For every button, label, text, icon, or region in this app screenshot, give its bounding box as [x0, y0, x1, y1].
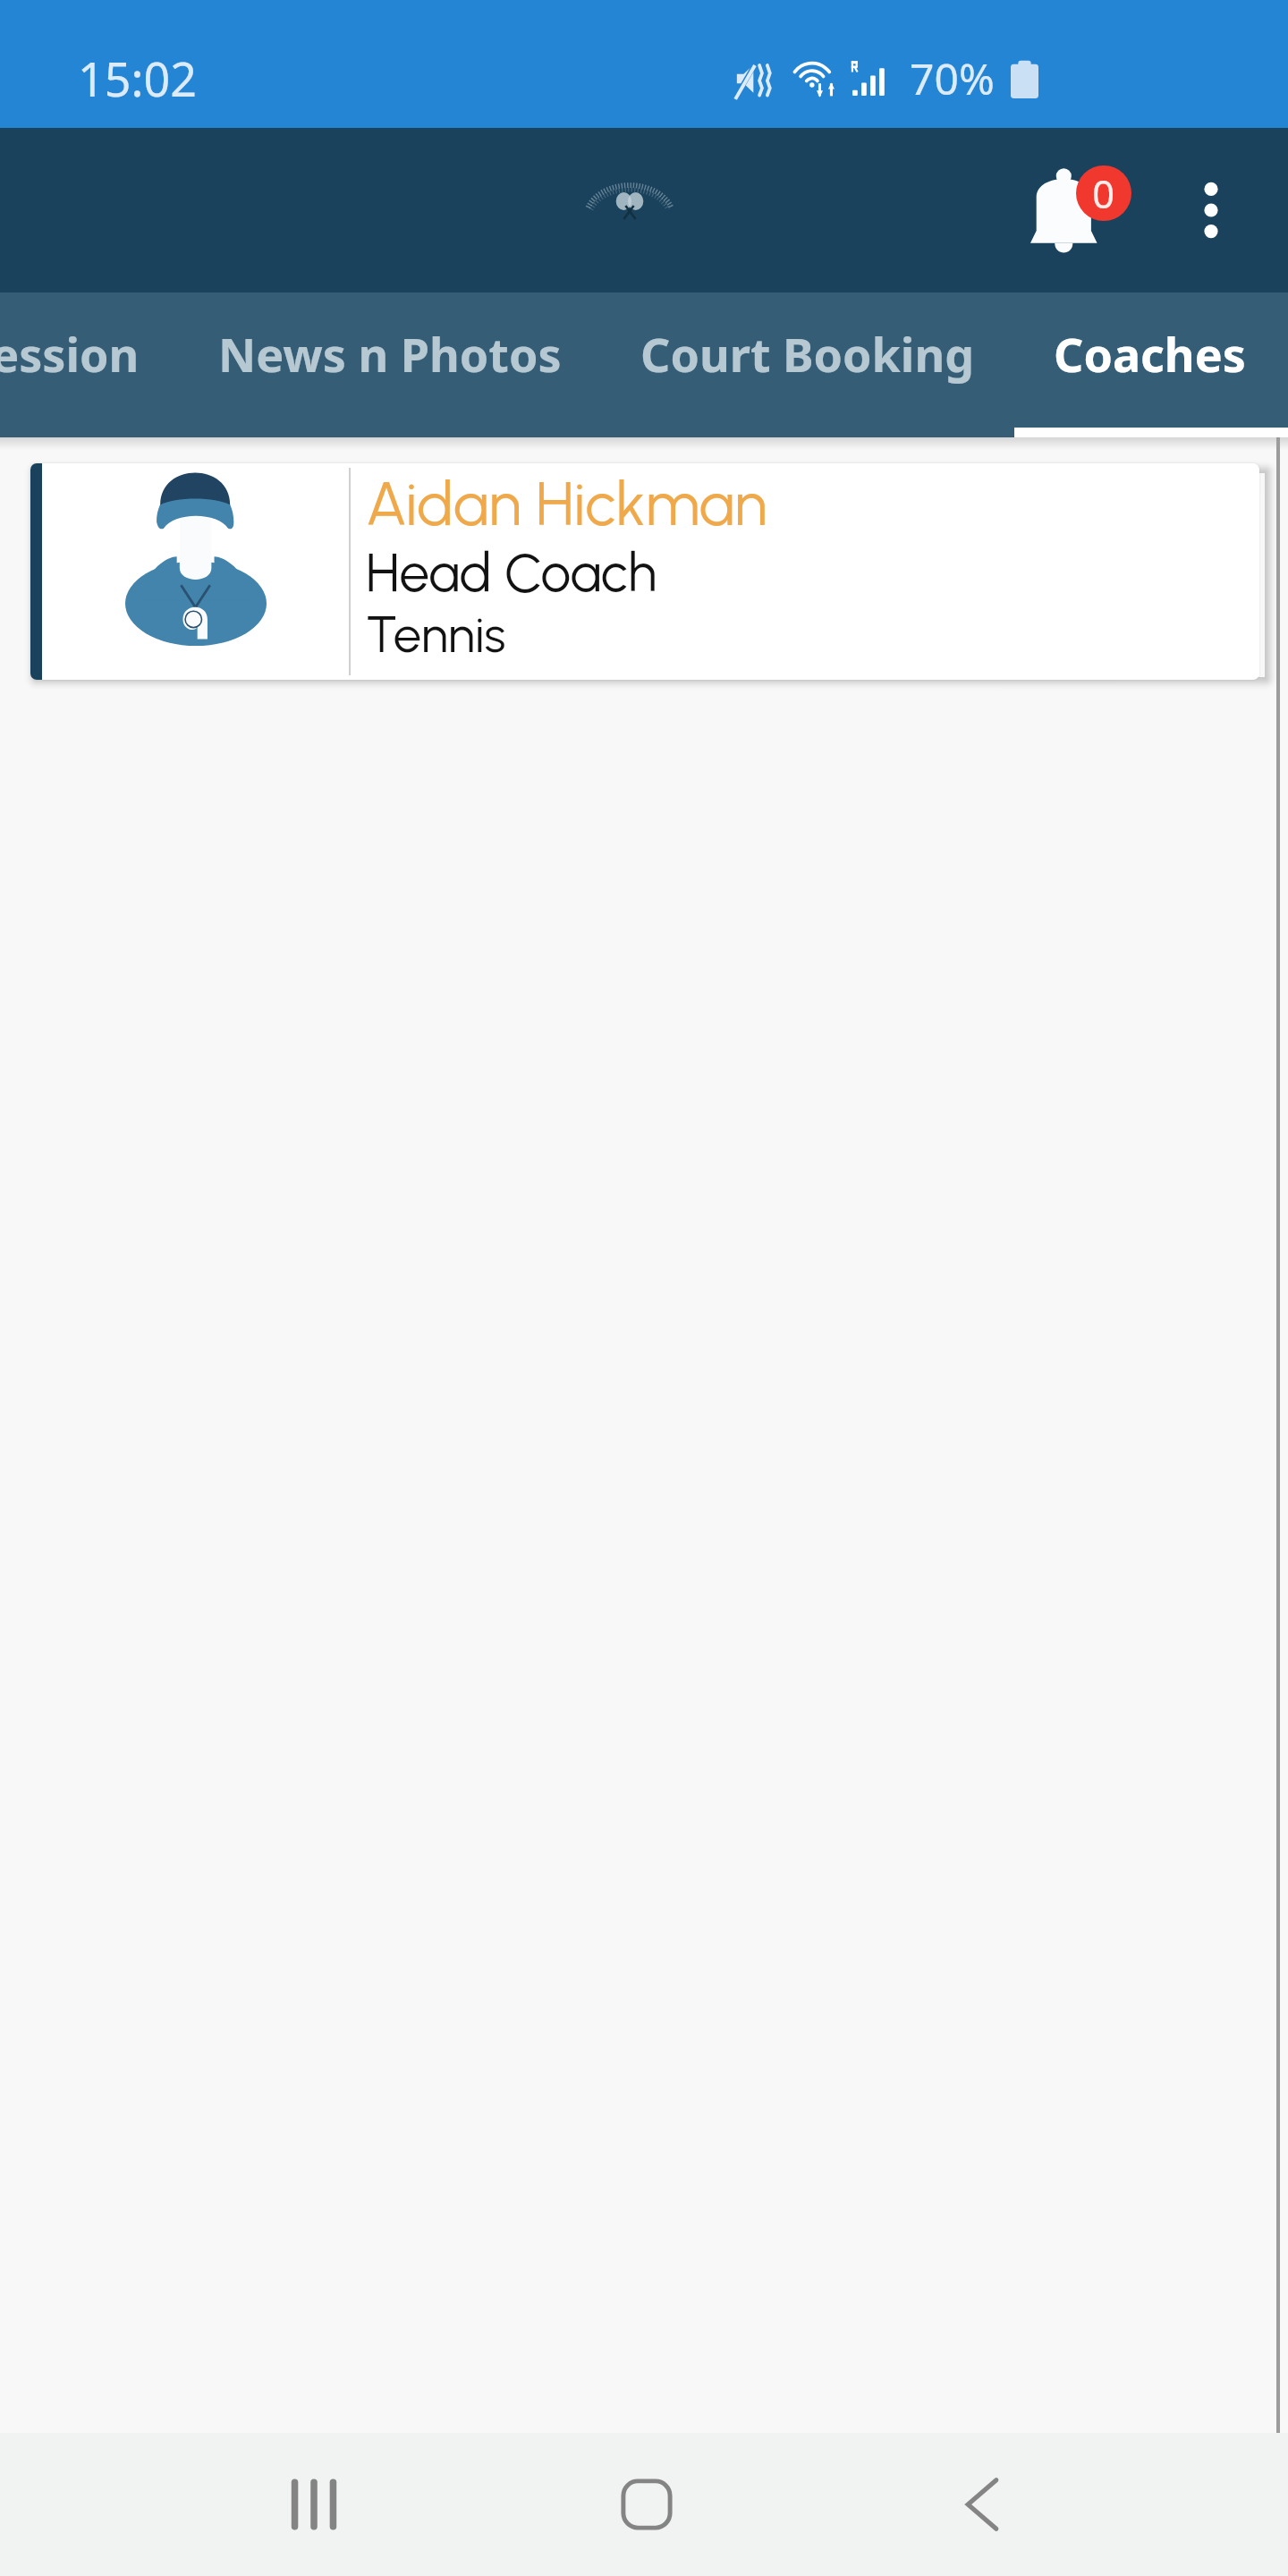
button[interactable]: Coaches: [1014, 292, 1285, 426]
staticText: Court Booking: [640, 322, 975, 386]
button[interactable]: Recent apps: [233, 2433, 394, 2576]
staticText: 0: [1092, 166, 1115, 220]
button[interactable]: Home: [566, 2433, 727, 2576]
button[interactable]: News n Photos: [179, 292, 601, 426]
staticText: Head Coach: [366, 540, 657, 605]
staticText: Tennis: [366, 605, 506, 665]
staticText: News n Photos: [218, 322, 562, 386]
button[interactable]: Notifications: [1017, 143, 1142, 277]
staticText: Aidan Hickman: [366, 467, 767, 540]
button[interactable]: Court Booking: [601, 292, 1014, 426]
staticText: Coaches: [1054, 322, 1246, 386]
staticText: 15:02: [78, 47, 197, 110]
button[interactable]: Aidan Hickman: [30, 463, 1259, 680]
button[interactable]: More options: [1159, 143, 1263, 277]
staticText: Group Session: [0, 322, 140, 386]
staticText: 70%: [910, 49, 995, 107]
button[interactable]: Back: [902, 2433, 1063, 2576]
button[interactable]: Group Session: [0, 292, 179, 426]
